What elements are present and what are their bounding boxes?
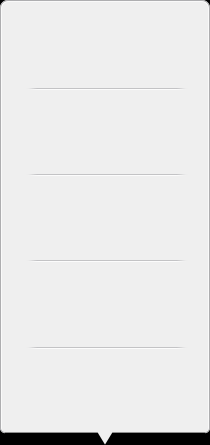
button[interactable]: Item 2 (0, 88, 210, 174)
button[interactable]: Item 4 (0, 260, 210, 347)
button[interactable]: Item 3 (0, 174, 210, 260)
button[interactable]: Item 1 (0, 0, 210, 88)
button[interactable]: Item 5 (0, 347, 210, 433)
